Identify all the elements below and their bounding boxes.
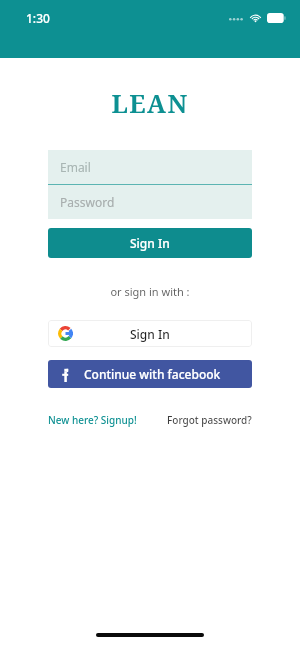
staticText: Forgot password?	[167, 413, 252, 427]
staticText: Password	[60, 194, 115, 210]
staticText: LEAN	[0, 86, 300, 120]
button[interactable]: Continue with Facebook	[48, 360, 252, 388]
staticText: 1:30	[26, 10, 50, 26]
button[interactable]: Sign In	[48, 228, 252, 258]
staticText: Continue with facebook	[84, 366, 221, 382]
staticText: Sign In	[130, 235, 170, 251]
button[interactable]: Sign In	[48, 320, 252, 347]
staticText: Sign In	[130, 326, 170, 342]
button[interactable]: Email	[48, 150, 252, 184]
button[interactable]: Forgot password?	[167, 413, 252, 427]
staticText: Email	[60, 159, 91, 175]
button[interactable]: Password	[48, 185, 252, 219]
button[interactable]: New here? Signup!	[48, 413, 137, 427]
staticText: or sign in with :	[0, 284, 300, 299]
staticText: New here? Signup!	[48, 413, 137, 427]
other: Continue with Facebook	[58, 367, 73, 382]
other: Sign in with Google	[58, 326, 73, 341]
